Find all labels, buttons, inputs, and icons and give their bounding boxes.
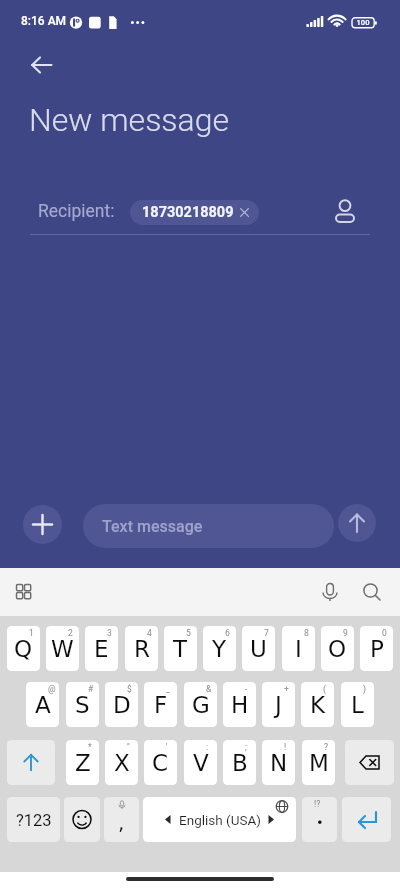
staticText: 3: [107, 628, 112, 638]
button[interactable]: I: [282, 626, 315, 671]
button[interactable]: Emoji: [64, 797, 100, 842]
button[interactable]: M: [302, 740, 335, 785]
staticText: $: [127, 684, 132, 694]
button[interactable]: B: [223, 740, 256, 785]
staticText: !?: [314, 799, 321, 809]
button[interactable]: A: [26, 682, 59, 727]
staticText: L: [351, 692, 364, 719]
staticText: Text message: [102, 517, 203, 536]
staticText: 6: [225, 628, 230, 638]
staticText: Recipient:: [38, 201, 115, 222]
staticText: 18730218809: [142, 204, 234, 221]
button[interactable]: •: [302, 797, 337, 842]
button[interactable]: V: [184, 740, 217, 785]
button[interactable]: Contacts: [327, 190, 363, 226]
staticText: V: [193, 750, 209, 777]
button[interactable]: U: [242, 626, 275, 671]
button[interactable]: P: [360, 626, 393, 671]
staticText: •: [316, 815, 324, 830]
staticText: H: [231, 692, 249, 719]
staticText: T: [173, 636, 188, 663]
staticText: Z: [75, 750, 91, 777]
button[interactable]: ?123: [7, 797, 60, 842]
button[interactable]: O: [321, 626, 354, 671]
button[interactable]: L: [341, 682, 374, 727]
staticText: ;: [245, 742, 247, 752]
button[interactable]: S: [66, 682, 99, 727]
staticText: :: [206, 742, 209, 752]
button[interactable]: Q: [7, 626, 40, 671]
button[interactable]: Back: [18, 47, 66, 95]
staticText: _: [166, 684, 170, 694]
staticText: 4: [147, 628, 152, 638]
staticText: -: [245, 684, 248, 694]
staticText: @: [48, 684, 56, 694]
button[interactable]: D: [105, 682, 138, 727]
staticText: G: [192, 692, 210, 719]
button[interactable]: X: [105, 740, 138, 785]
button[interactable]: English (USA): [143, 797, 296, 842]
staticText: R: [134, 636, 150, 663]
staticText: &: [206, 684, 212, 694]
button[interactable]: Y: [203, 626, 236, 671]
button[interactable]: ,: [104, 797, 139, 842]
staticText: #: [88, 684, 94, 694]
button[interactable]: Z: [66, 740, 99, 785]
staticText: ?123: [16, 811, 52, 830]
button[interactable]: C: [144, 740, 177, 785]
button[interactable]: Backspace: [345, 740, 394, 785]
staticText: D: [113, 692, 131, 719]
staticText: F: [154, 692, 168, 719]
staticText: W: [51, 636, 74, 663]
staticText: A: [35, 692, 51, 719]
staticText: English (USA): [179, 812, 261, 828]
staticText: C: [152, 750, 169, 777]
button[interactable]: 18730218809: [130, 200, 259, 225]
staticText: B: [232, 750, 248, 777]
staticText: Q: [14, 636, 33, 663]
staticText: P: [370, 636, 384, 663]
button[interactable]: N: [262, 740, 295, 785]
staticText: ): [363, 684, 366, 694]
button[interactable]: T: [164, 626, 197, 671]
staticText: 100: [353, 18, 373, 27]
button[interactable]: E: [85, 626, 118, 671]
staticText: N: [270, 750, 288, 777]
button[interactable]: Text message: [83, 504, 334, 548]
staticText: *: [88, 742, 92, 752]
button[interactable]: Toolbar: [10, 578, 38, 606]
staticText: ": [127, 742, 130, 752]
staticText: New message: [29, 101, 230, 139]
staticText: 8:16 AM: [21, 14, 67, 28]
button[interactable]: W: [46, 626, 79, 671]
staticText: O: [328, 636, 347, 663]
button[interactable]: K: [301, 682, 334, 727]
staticText: S: [75, 692, 90, 719]
button[interactable]: Search: [358, 578, 386, 606]
staticText: ,: [118, 811, 125, 834]
button[interactable]: Send: [338, 504, 376, 542]
staticText: 9: [343, 628, 348, 638]
button[interactable]: G: [184, 682, 217, 727]
staticText: 2: [68, 628, 73, 638]
staticText: 1: [29, 628, 34, 638]
staticText: +: [284, 684, 289, 694]
button[interactable]: Voice input: [316, 578, 344, 606]
staticText: 7: [264, 628, 269, 638]
button[interactable]: Add attachment: [23, 505, 62, 544]
staticText: U: [250, 636, 267, 663]
button[interactable]: R: [125, 626, 158, 671]
staticText: 0: [382, 628, 387, 638]
staticText: ': [166, 742, 168, 752]
staticText: J: [275, 692, 282, 719]
button[interactable]: J: [262, 682, 295, 727]
button[interactable]: Enter: [342, 797, 391, 842]
staticText: M: [309, 750, 329, 777]
staticText: X: [114, 750, 130, 777]
button[interactable]: F: [144, 682, 177, 727]
staticText: I: [295, 636, 302, 663]
staticText: E: [94, 636, 109, 663]
button[interactable]: H: [223, 682, 256, 727]
button[interactable]: Shift: [7, 740, 55, 785]
staticText: 8: [304, 628, 309, 638]
